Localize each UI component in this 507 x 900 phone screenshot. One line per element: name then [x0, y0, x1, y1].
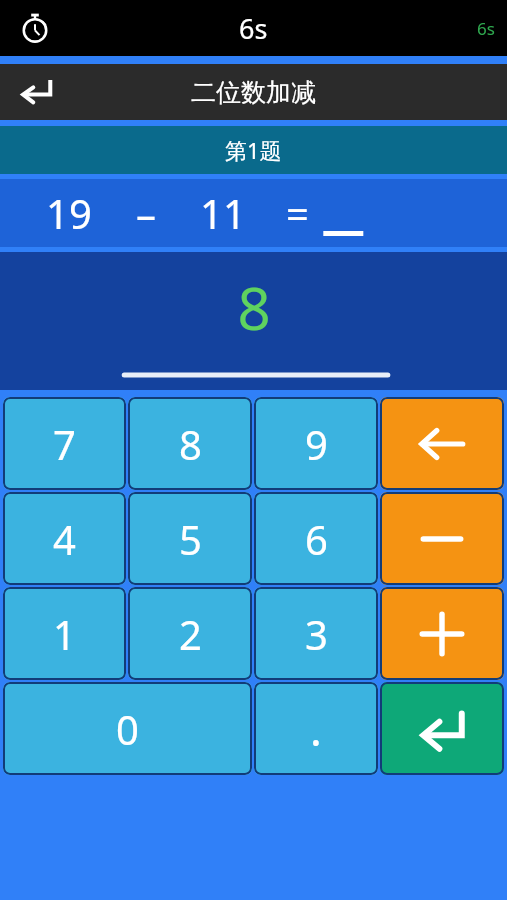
- staticText: 7: [53, 417, 76, 471]
- staticText: 8: [179, 417, 202, 471]
- staticText: –: [136, 186, 156, 240]
- staticText: 6s: [239, 10, 268, 47]
- staticText: .: [310, 699, 322, 759]
- button[interactable]: Back: [0, 64, 72, 120]
- staticText: 4: [53, 512, 76, 566]
- button[interactable]: .: [254, 682, 378, 775]
- staticText: =: [286, 186, 309, 240]
- button[interactable]: 8: [128, 397, 252, 490]
- staticText: 5: [179, 512, 202, 566]
- staticText: 11: [200, 186, 246, 240]
- button[interactable]: 4: [3, 492, 126, 585]
- staticText: 二位数加减: [191, 77, 316, 108]
- button[interactable]: 5: [128, 492, 252, 585]
- button[interactable]: 9: [254, 397, 378, 490]
- staticText: 8: [237, 268, 271, 347]
- button[interactable]: Plus: [380, 587, 504, 680]
- staticText: 9: [305, 417, 328, 471]
- staticText: 19: [46, 186, 92, 240]
- staticText: 2: [179, 607, 202, 661]
- button[interactable]: 0: [3, 682, 252, 775]
- staticText: 0: [116, 702, 139, 756]
- staticText: 6: [305, 512, 328, 566]
- button[interactable]: 7: [3, 397, 126, 490]
- button[interactable]: Enter: [380, 682, 504, 775]
- button[interactable]: 6: [254, 492, 378, 585]
- button[interactable]: Minus: [380, 492, 504, 585]
- staticText: 第1题: [225, 135, 282, 165]
- button[interactable]: Backspace: [380, 397, 504, 490]
- button[interactable]: 2: [128, 587, 252, 680]
- other: Timer: [18, 11, 52, 45]
- button[interactable]: 1: [3, 587, 126, 680]
- staticText: 3: [305, 607, 328, 661]
- staticText: 6s: [477, 17, 495, 40]
- staticText: 1: [53, 607, 76, 661]
- button[interactable]: 3: [254, 587, 378, 680]
